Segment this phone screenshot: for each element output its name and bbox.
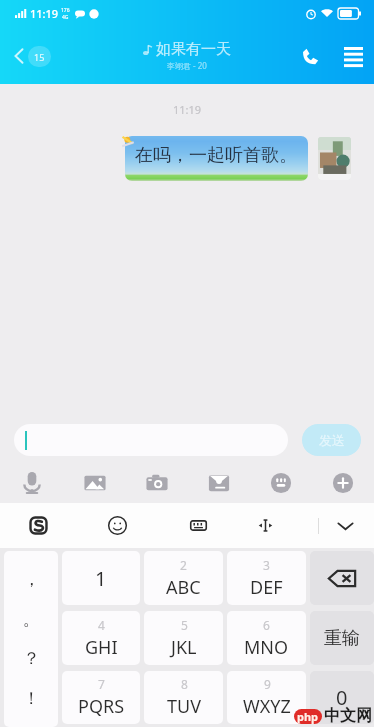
button[interactable] — [14, 424, 288, 456]
staticText: 8 — [181, 676, 188, 692]
button[interactable]: 4 — [62, 611, 140, 665]
staticText: 李翊君 - 20 — [167, 60, 207, 71]
staticText: ABC — [166, 575, 201, 600]
staticText: 重输 — [324, 627, 360, 650]
staticText: 4 — [98, 617, 105, 633]
button[interactable]: Delete — [310, 551, 374, 605]
staticText: ！ — [23, 688, 40, 709]
staticText: ？ — [23, 648, 40, 669]
staticText: JKL — [171, 635, 197, 660]
staticText: 15 — [34, 51, 45, 63]
staticText: 2 — [180, 557, 187, 573]
button[interactable]: More — [312, 462, 374, 503]
button[interactable]: Camera — [126, 462, 188, 503]
button[interactable]: Back — [14, 31, 51, 81]
staticText: PQRS — [78, 694, 125, 719]
staticText: 11:19 — [0, 102, 374, 117]
staticText: 176 — [61, 7, 70, 14]
staticText: WXYZ — [243, 694, 291, 719]
staticText: DEF — [250, 575, 283, 600]
staticText: 4G — [62, 14, 69, 21]
staticText: ， — [23, 569, 40, 590]
button[interactable]: Sogou — [16, 503, 60, 548]
button[interactable]: Mic — [0, 462, 63, 503]
staticText: 。 — [23, 609, 40, 630]
button[interactable]: 8 — [144, 671, 223, 724]
staticText: 如果有一天 — [156, 40, 231, 59]
staticText: 6 — [263, 617, 270, 633]
button[interactable]: 0 — [310, 671, 374, 724]
staticText: MNO — [244, 635, 289, 660]
staticText: 中文网 — [324, 706, 372, 726]
staticText: 3 — [263, 557, 270, 573]
staticText: 11:19 — [30, 6, 59, 21]
button[interactable]: Emoji — [250, 462, 312, 503]
button[interactable]: Menu — [332, 31, 374, 81]
staticText: 在吗，一起听首歌。 — [135, 144, 297, 167]
button[interactable]: Avatar — [318, 137, 351, 180]
staticText: GHI — [85, 635, 118, 660]
button[interactable]: Emoji — [95, 503, 139, 548]
button[interactable]: Cursor — [243, 503, 287, 548]
button[interactable]: Keyboard — [176, 503, 220, 548]
staticText: TUV — [167, 694, 201, 719]
staticText: 0 — [336, 684, 348, 711]
button[interactable]: 重输 — [310, 611, 374, 665]
button[interactable]: 7 — [62, 671, 140, 724]
staticText: 5 — [181, 617, 188, 633]
staticText: 发送 — [319, 432, 345, 448]
button[interactable]: Call — [288, 31, 332, 81]
button[interactable]: 9 — [227, 671, 306, 724]
button[interactable]: 3 — [227, 551, 306, 605]
button[interactable]: Video — [188, 462, 250, 503]
button[interactable]: 发送 — [302, 424, 361, 456]
staticText: 1 — [95, 565, 107, 592]
button[interactable]: 在吗，一起听首歌。 — [125, 136, 308, 181]
staticText: php — [297, 709, 319, 724]
staticText: 7 — [98, 676, 105, 692]
button[interactable]: 1 — [62, 551, 140, 605]
button[interactable]: Photo — [63, 462, 126, 503]
button[interactable]: 2 — [144, 551, 223, 605]
button[interactable]: Hide keyboard — [323, 503, 367, 548]
staticText: 9 — [264, 676, 271, 692]
button[interactable]: 5 — [144, 611, 223, 665]
button[interactable]: ， — [4, 551, 58, 727]
button[interactable]: 6 — [227, 611, 306, 665]
